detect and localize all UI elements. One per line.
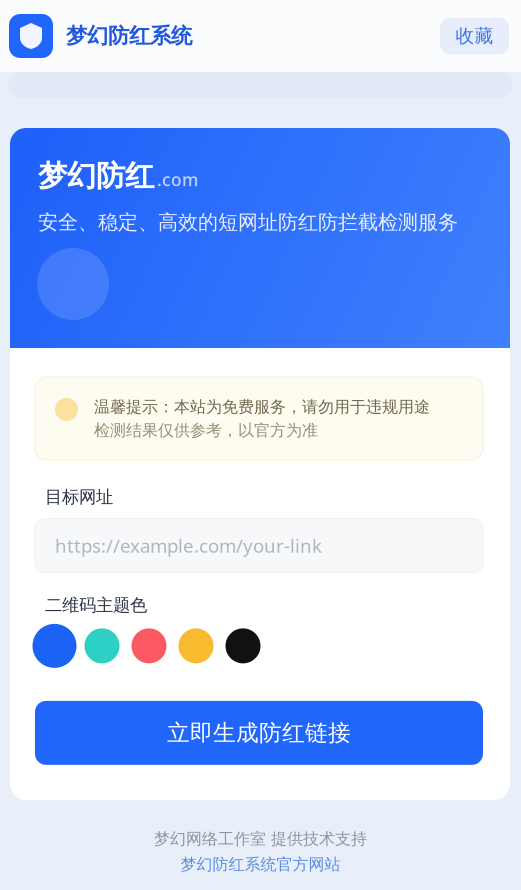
staticText: 梦幻防红系统 (66, 23, 192, 49)
button[interactable]: 立即生成防红链接 (35, 701, 483, 765)
button[interactable]: 红色主题 (126, 622, 173, 670)
button[interactable]: 青色主题 (79, 622, 126, 670)
staticText: 收藏 (455, 24, 493, 47)
staticText: 梦幻防红 (38, 158, 154, 194)
button[interactable]: 蓝色主题 (32, 622, 79, 670)
staticText: .com (157, 168, 198, 191)
button[interactable]: 橙色主题 (173, 622, 220, 670)
staticText: 梦幻网络工作室 提供技术支持 (154, 829, 367, 849)
button[interactable]: 收藏 (440, 17, 509, 54)
staticText: 梦幻防红系统官方网站 (180, 855, 340, 874)
staticText: 立即生成防红链接 (167, 719, 351, 747)
staticText: 二维码主题色 (45, 595, 147, 616)
staticText: 检测结果仅供参考，以官方为准 (94, 421, 318, 440)
staticText: 安全、稳定、高效的短网址防红防拦截检测服务 (38, 210, 458, 235)
staticText: https://example.com/your-link (55, 533, 322, 558)
staticText: 温馨提示：本站为免费服务，请勿用于违规用途 (94, 397, 430, 417)
button[interactable]: 黑色主题 (220, 622, 267, 670)
staticText: 目标网址 (45, 486, 113, 508)
button[interactable]: 梦幻防红系统官方网站 (180, 855, 340, 874)
